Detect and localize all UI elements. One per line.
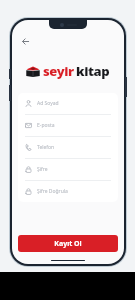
button[interactable]: E-posta (18, 115, 118, 136)
staticText: kitap (76, 62, 110, 80)
staticText: seyir (43, 62, 74, 80)
button[interactable]: Ad Soyad (18, 93, 118, 114)
staticText: Telefon (37, 144, 55, 151)
button[interactable]: Kayıt Ol (18, 235, 118, 252)
button[interactable]: Telefon (18, 137, 118, 158)
staticText: Ad Soyad (37, 100, 59, 107)
staticText: Şifre (37, 166, 48, 173)
staticText: Kayıt Ol (54, 239, 82, 249)
button[interactable]: Şifre Doğrula (18, 181, 118, 202)
button[interactable]: Back (18, 34, 32, 48)
button[interactable]: Şifre (18, 159, 118, 180)
staticText: Şifre Doğrula (37, 188, 68, 195)
staticText: E-posta (37, 122, 55, 129)
